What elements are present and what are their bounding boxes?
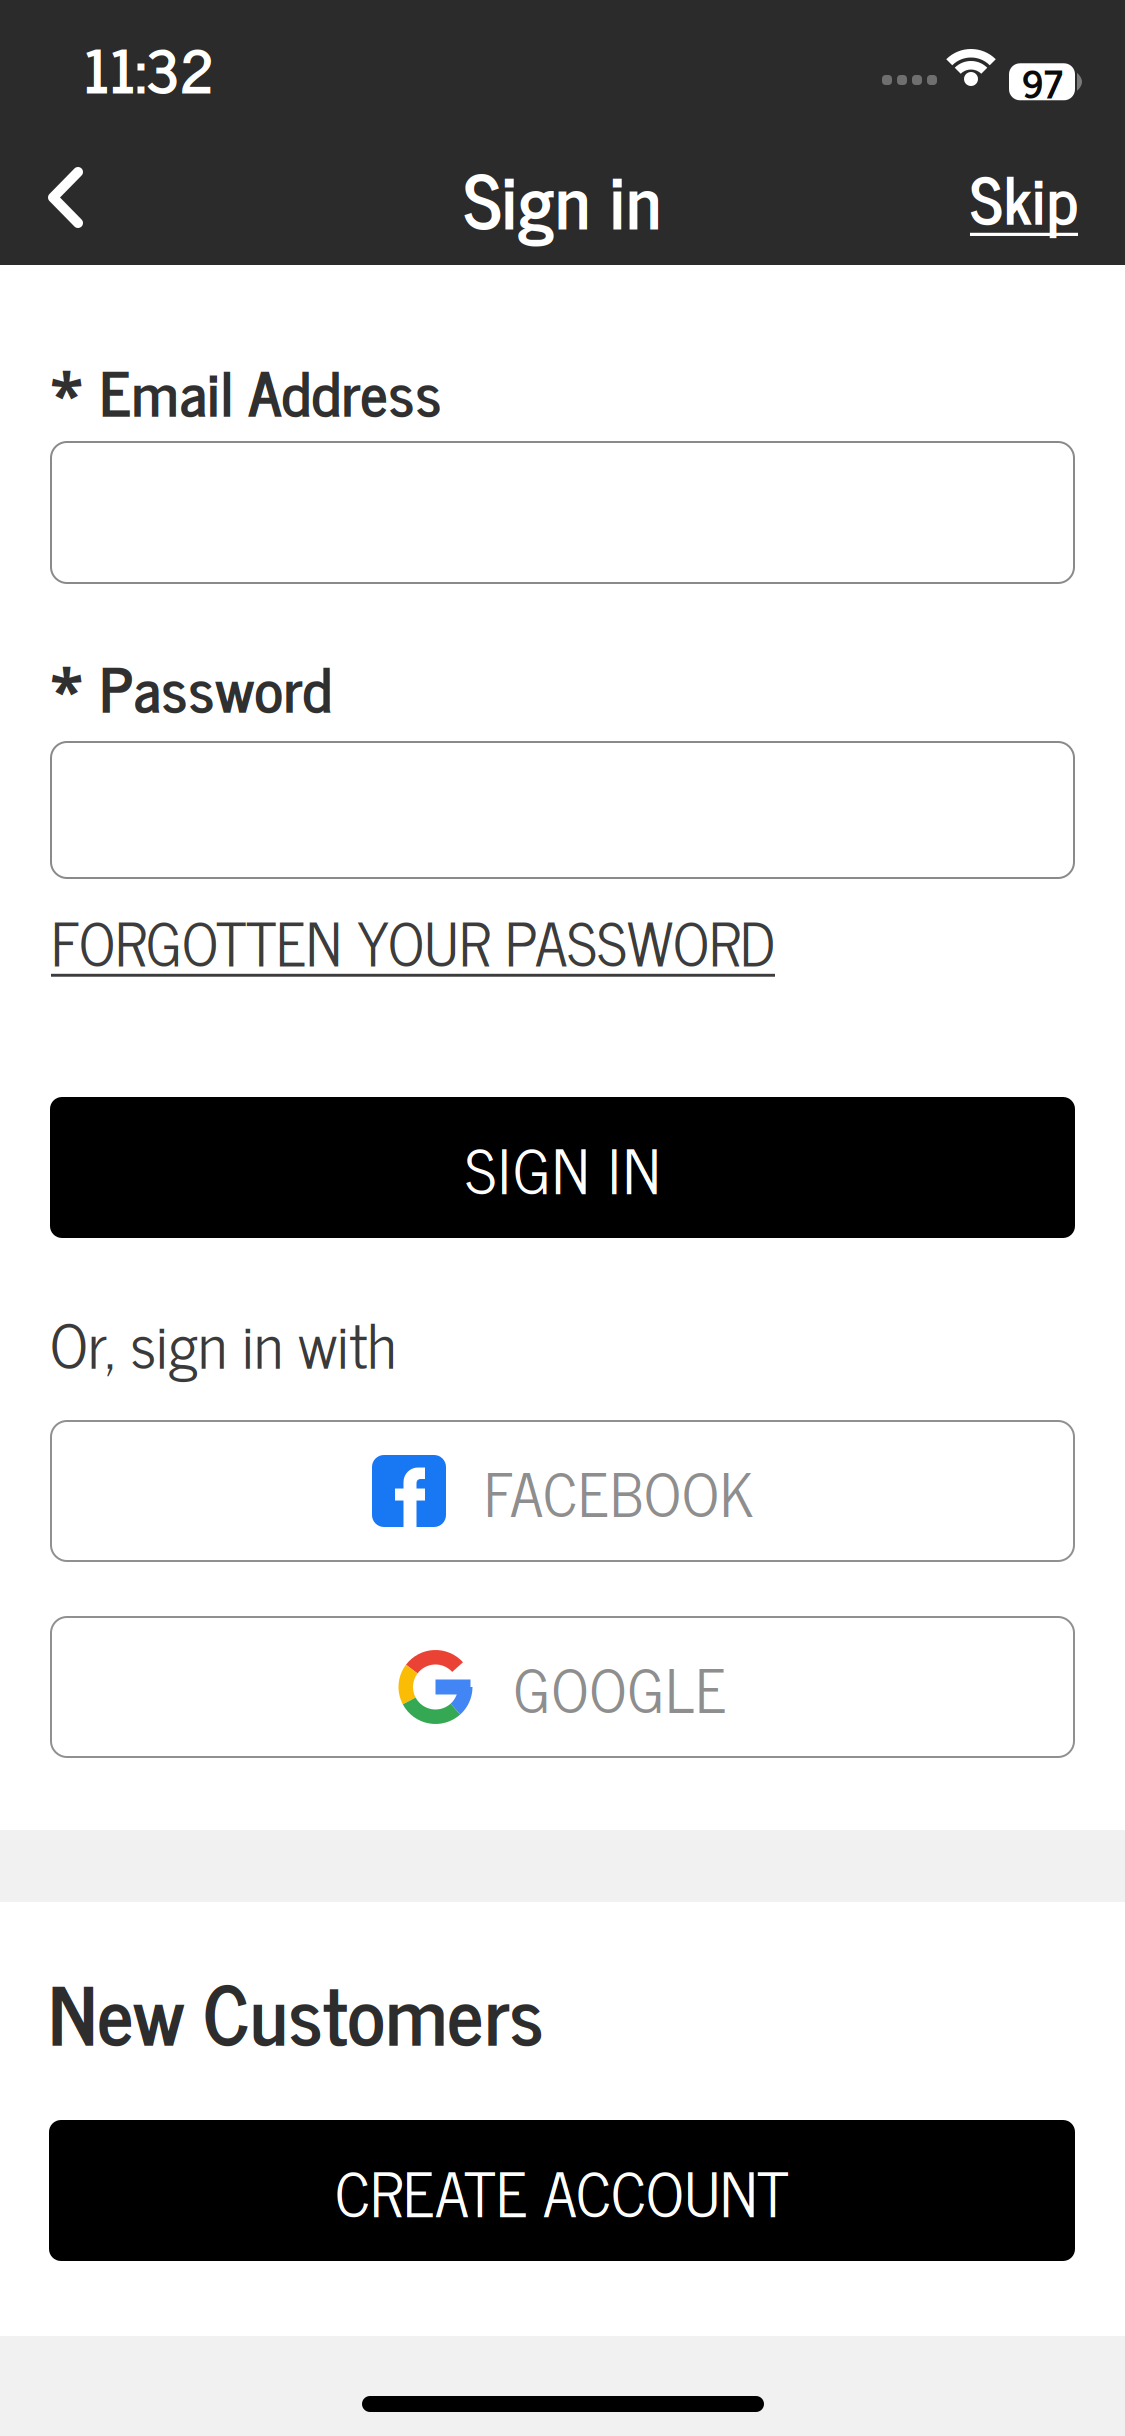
button[interactable]: Password bbox=[50, 741, 1075, 879]
staticText: FORGOTTEN YOUR PASSWORD bbox=[51, 893, 775, 989]
staticText: * Email Address bbox=[50, 341, 442, 439]
staticText: 97 bbox=[1021, 50, 1062, 114]
button[interactable]: SIGN IN bbox=[50, 1097, 1075, 1238]
button[interactable]: Email Address bbox=[50, 441, 1075, 584]
staticText: Or, sign in with bbox=[50, 1292, 396, 1392]
staticText: Sign in bbox=[463, 136, 661, 258]
staticText: FACEBOOK bbox=[484, 1442, 753, 1540]
staticText: GOOGLE bbox=[513, 1638, 726, 1736]
staticText: 11:32 bbox=[84, 20, 214, 116]
button[interactable]: FACEBOOK bbox=[50, 1420, 1075, 1562]
button[interactable]: Skip bbox=[970, 147, 1078, 247]
button[interactable]: GOOGLE bbox=[50, 1616, 1075, 1758]
staticText: CREATE ACCOUNT bbox=[335, 2140, 789, 2241]
button[interactable]: CREATE ACCOUNT bbox=[49, 2120, 1075, 2261]
staticText: * Password bbox=[50, 637, 332, 735]
staticText: Skip bbox=[970, 144, 1078, 250]
button[interactable]: FORGOTTEN YOUR PASSWORD bbox=[51, 891, 775, 991]
button[interactable]: Back bbox=[48, 167, 84, 228]
staticText: SIGN IN bbox=[465, 1117, 660, 1218]
staticText: New Customers bbox=[48, 1945, 544, 2077]
